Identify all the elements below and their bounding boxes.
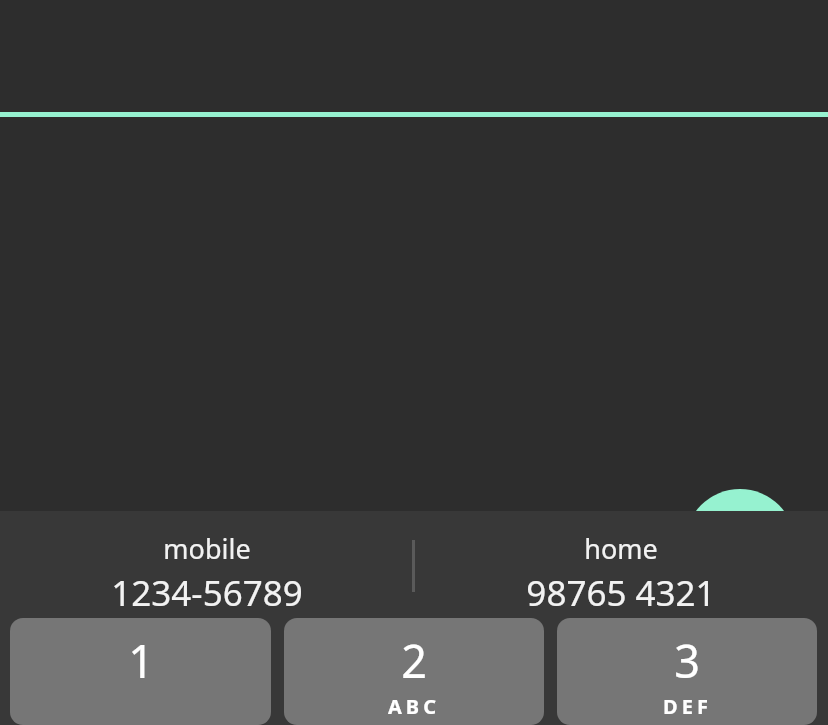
button[interactable]: Add contact (685, 489, 795, 599)
staticText: ABC (388, 693, 440, 720)
staticText: home (584, 530, 658, 567)
staticText: 1 (128, 630, 154, 691)
staticText: DEF (663, 693, 712, 720)
button[interactable]: 1 (10, 618, 271, 725)
staticText: mobile (163, 530, 251, 567)
staticText: 98765 4321 (526, 569, 716, 617)
staticText: 2 (401, 630, 427, 691)
staticText: 3 (674, 630, 700, 691)
staticText: 1234-56789 (111, 569, 303, 617)
button[interactable]: mobile (0, 511, 413, 618)
button[interactable]: 3 (557, 618, 817, 725)
button[interactable]: home (413, 511, 828, 618)
button[interactable]: 2 (284, 618, 544, 725)
